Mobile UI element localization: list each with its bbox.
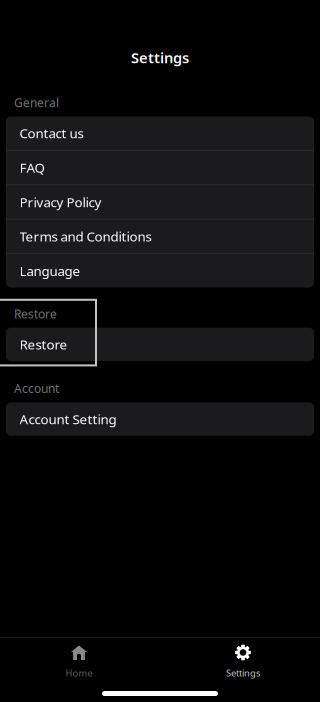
button[interactable]: FAQ [6, 151, 314, 184]
button[interactable]: Terms and Conditions [6, 220, 314, 253]
staticText: Restore [19, 336, 67, 353]
staticText: Restore [14, 306, 57, 322]
staticText: Privacy Policy [19, 193, 101, 211]
button[interactable]: Account Setting [6, 402, 314, 436]
staticText: Terms and Conditions [19, 227, 151, 245]
button[interactable]: Language [6, 254, 314, 287]
staticText: Settings [131, 48, 189, 67]
staticText: Account Setting [19, 410, 116, 428]
button[interactable]: Restore [6, 328, 314, 361]
staticText: Account [14, 380, 59, 396]
staticText: FAQ [19, 159, 44, 176]
staticText: Contact us [19, 124, 83, 142]
staticText: Settings [226, 667, 260, 679]
staticText: General [14, 94, 59, 110]
button[interactable]: Contact us [6, 116, 314, 150]
staticText: Home [65, 667, 92, 679]
button[interactable]: Settings [160, 638, 320, 678]
button[interactable]: Home [0, 638, 160, 678]
button[interactable]: Privacy Policy [6, 185, 314, 219]
staticText: Language [19, 262, 80, 280]
